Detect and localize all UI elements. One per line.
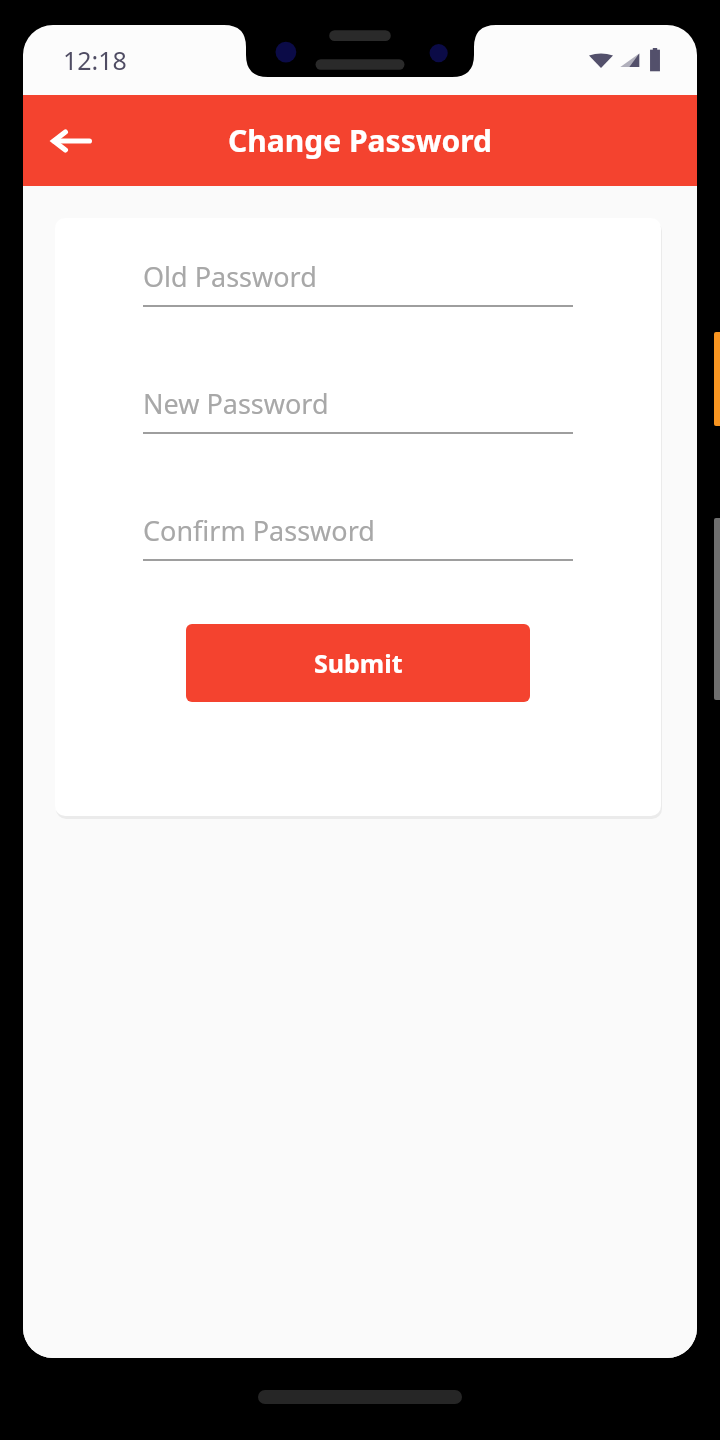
button[interactable]: New Password [143, 385, 573, 434]
staticText: Confirm Password [143, 512, 375, 549]
staticText: Change Password [228, 120, 492, 161]
button[interactable]: Submit [186, 624, 530, 702]
staticText: New Password [143, 385, 329, 422]
button[interactable]: Back [43, 113, 99, 169]
button[interactable]: Confirm Password [143, 512, 573, 561]
staticText: 12:18 [63, 43, 127, 77]
staticText: Submit [314, 646, 403, 680]
staticText: Old Password [143, 258, 317, 295]
button[interactable]: Old Password [143, 258, 573, 307]
